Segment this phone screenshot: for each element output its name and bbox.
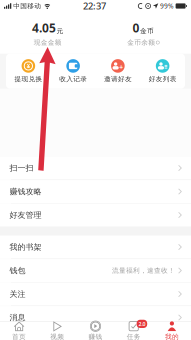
button[interactable]: 消息: [0, 306, 191, 329]
button[interactable]: 2.0: [115, 322, 153, 340]
staticText: 99%: [160, 2, 174, 10]
staticText: 关注: [9, 289, 25, 299]
button[interactable]: 赚钱: [76, 322, 115, 340]
staticText: 现金金额: [34, 38, 62, 47]
button[interactable]: 赚钱攻略: [0, 180, 191, 203]
staticText: 任务: [127, 333, 141, 340]
button[interactable]: 钱包: [0, 259, 191, 282]
staticText: 金币: [140, 27, 154, 35]
staticText: 2.0: [138, 320, 145, 327]
staticText: 中国移动: [13, 2, 41, 10]
staticText: 好友管理: [9, 210, 41, 220]
staticText: 0: [133, 20, 140, 36]
button[interactable]: 收入记录: [51, 59, 96, 83]
staticText: 视频: [50, 333, 64, 340]
staticText: 4.05: [32, 20, 56, 36]
button[interactable]: 关注: [0, 283, 191, 306]
button[interactable]: 视频: [38, 322, 76, 340]
staticText: 我的书架: [9, 242, 41, 252]
staticText: +: [119, 63, 123, 72]
staticText: 邀请好友: [104, 75, 132, 83]
button[interactable]: 首页: [0, 322, 38, 340]
staticText: 好友列表: [149, 75, 177, 83]
staticText: 扫一扫: [9, 163, 33, 173]
staticText: 收入记录: [59, 75, 87, 83]
staticText: 钱包: [9, 266, 25, 275]
button[interactable]: 提现兑换: [6, 59, 51, 83]
button[interactable]: +: [95, 59, 140, 83]
button[interactable]: 我的书架: [0, 236, 191, 259]
button[interactable]: 我的: [153, 322, 191, 340]
staticText: 消息: [9, 313, 25, 322]
button[interactable]: 好友列表: [140, 59, 185, 83]
staticText: 我的: [165, 333, 179, 340]
staticText: 赚钱: [88, 333, 102, 340]
staticText: 提现兑换: [14, 75, 42, 83]
staticText: 22:37: [83, 0, 106, 12]
staticText: 赚钱攻略: [9, 187, 41, 196]
button[interactable]: 好友管理: [0, 204, 191, 227]
staticText: 金币余额: [127, 38, 155, 47]
staticText: 首页: [12, 333, 26, 340]
staticText: 流量福利，速查收！: [112, 266, 175, 275]
staticText: 元: [56, 27, 63, 35]
button[interactable]: 扫一扫: [0, 157, 191, 180]
